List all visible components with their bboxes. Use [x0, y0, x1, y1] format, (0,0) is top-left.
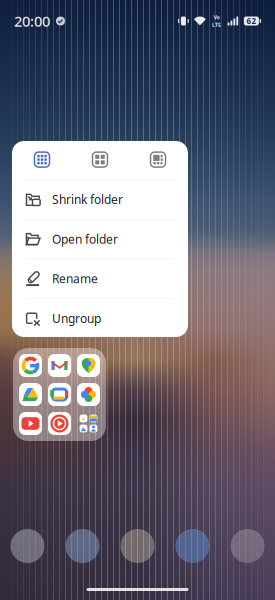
staticText: LTE	[212, 21, 221, 28]
staticText: Shrink folder	[52, 191, 123, 207]
button[interactable]: Mixed grid layout	[129, 140, 187, 179]
button[interactable]: Open folder	[12, 219, 188, 258]
button[interactable]: Google folder	[13, 348, 106, 441]
button[interactable]: 2 by 2 grid layout	[71, 140, 129, 179]
staticText: Rename	[52, 271, 98, 287]
staticText: 20:00	[14, 11, 50, 31]
button[interactable]: Shrink folder	[12, 180, 188, 219]
staticText: 62	[246, 16, 256, 26]
staticText: Open folder	[52, 231, 118, 247]
button[interactable]: Rename	[12, 259, 188, 298]
staticText: Ungroup	[52, 310, 101, 326]
staticText: Vo	[213, 14, 219, 21]
button[interactable]: 3 by 3 grid layout	[13, 140, 71, 179]
button[interactable]: Ungroup	[12, 299, 188, 338]
